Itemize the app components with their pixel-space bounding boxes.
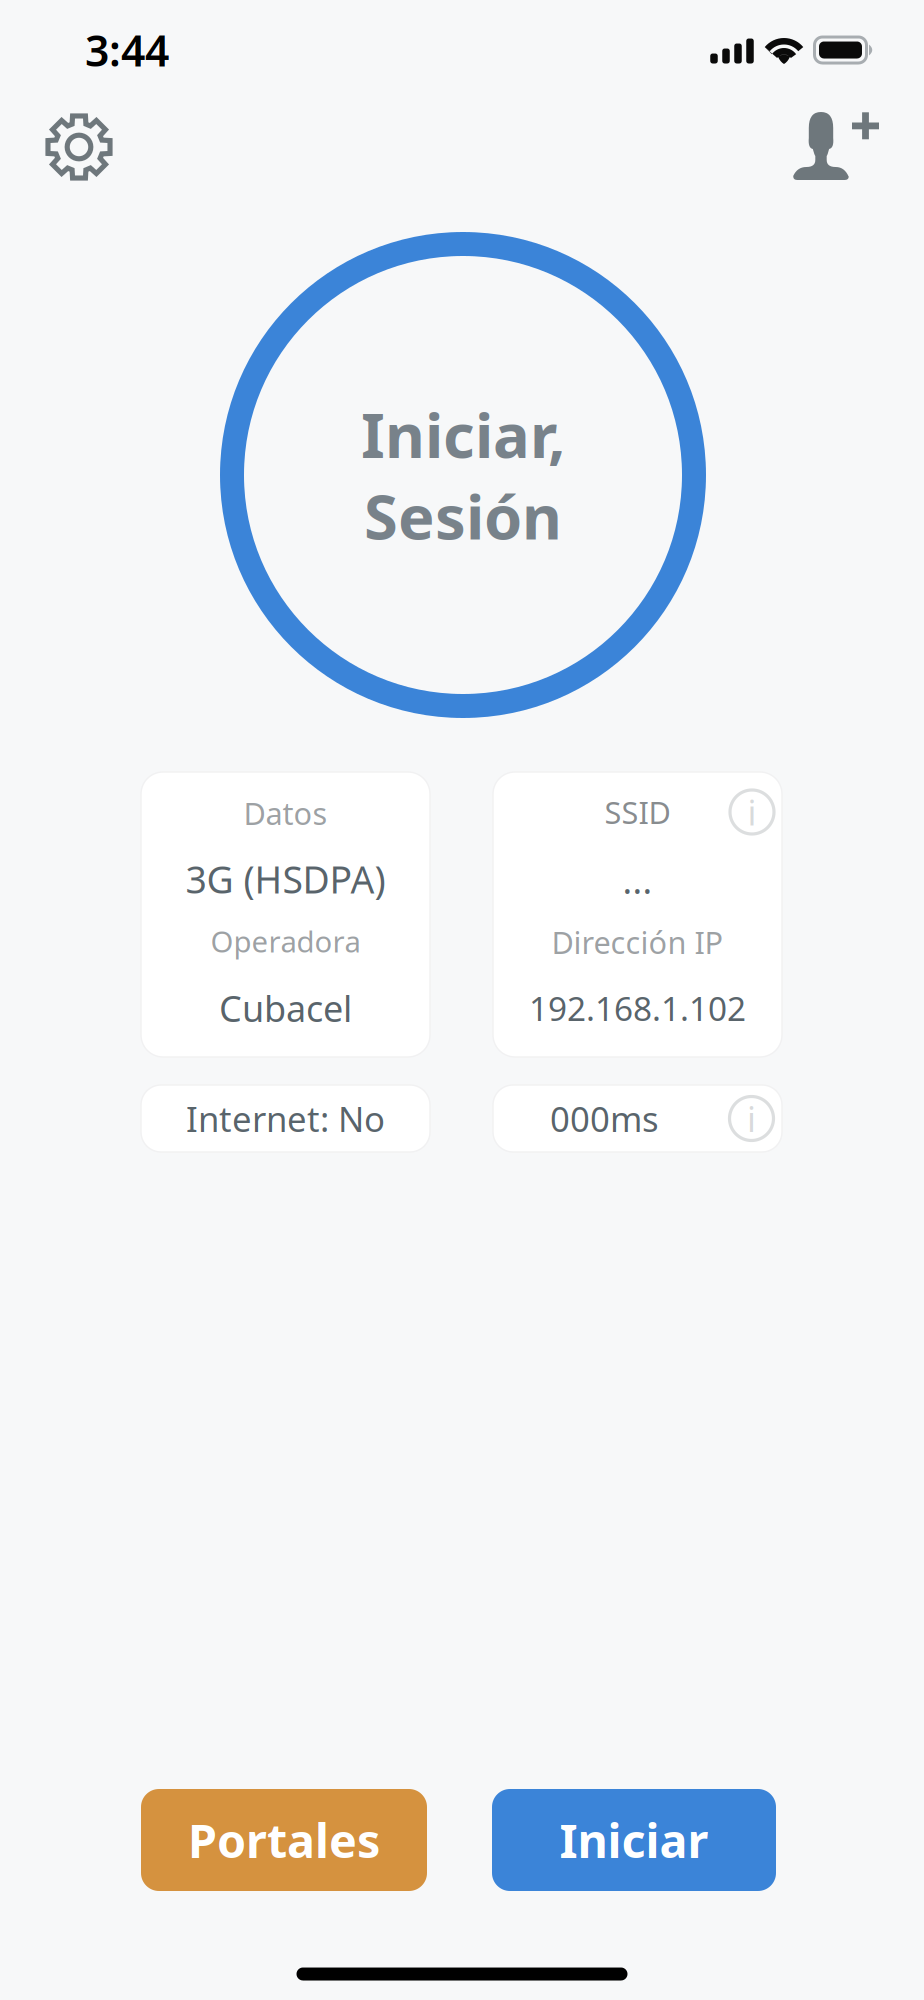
staticText: ... bbox=[622, 856, 652, 904]
button[interactable]: About latency bbox=[729, 1096, 773, 1140]
staticText: Operadora bbox=[210, 921, 360, 960]
button[interactable]: Internet: No bbox=[141, 1085, 430, 1152]
button[interactable]: Add user bbox=[777, 96, 892, 196]
staticText: Cubacel bbox=[219, 984, 352, 1032]
button[interactable]: About SSID bbox=[730, 790, 774, 834]
staticText: 3G (HSDPA) bbox=[185, 854, 385, 904]
button[interactable]: Portales bbox=[141, 1789, 427, 1891]
button[interactable]: Iniciar, bbox=[220, 232, 706, 718]
staticText: i bbox=[747, 1095, 756, 1141]
staticText: i bbox=[747, 789, 756, 835]
staticText: Iniciar bbox=[559, 1809, 708, 1871]
staticText: Portales bbox=[188, 1809, 380, 1871]
staticText: Sesión bbox=[364, 475, 562, 556]
staticText: SSID bbox=[604, 792, 670, 832]
button[interactable]: Settings bbox=[29, 97, 129, 197]
staticText: 3:44 bbox=[85, 22, 169, 78]
button[interactable]: Iniciar bbox=[492, 1789, 776, 1891]
staticText: Iniciar, bbox=[361, 394, 565, 475]
staticText: Datos bbox=[243, 793, 327, 833]
staticText: 000ms bbox=[550, 1095, 659, 1141]
staticText: 192.168.1.102 bbox=[529, 986, 746, 1030]
staticText: Dirección IP bbox=[551, 922, 723, 962]
staticText: Internet: No bbox=[186, 1095, 385, 1141]
